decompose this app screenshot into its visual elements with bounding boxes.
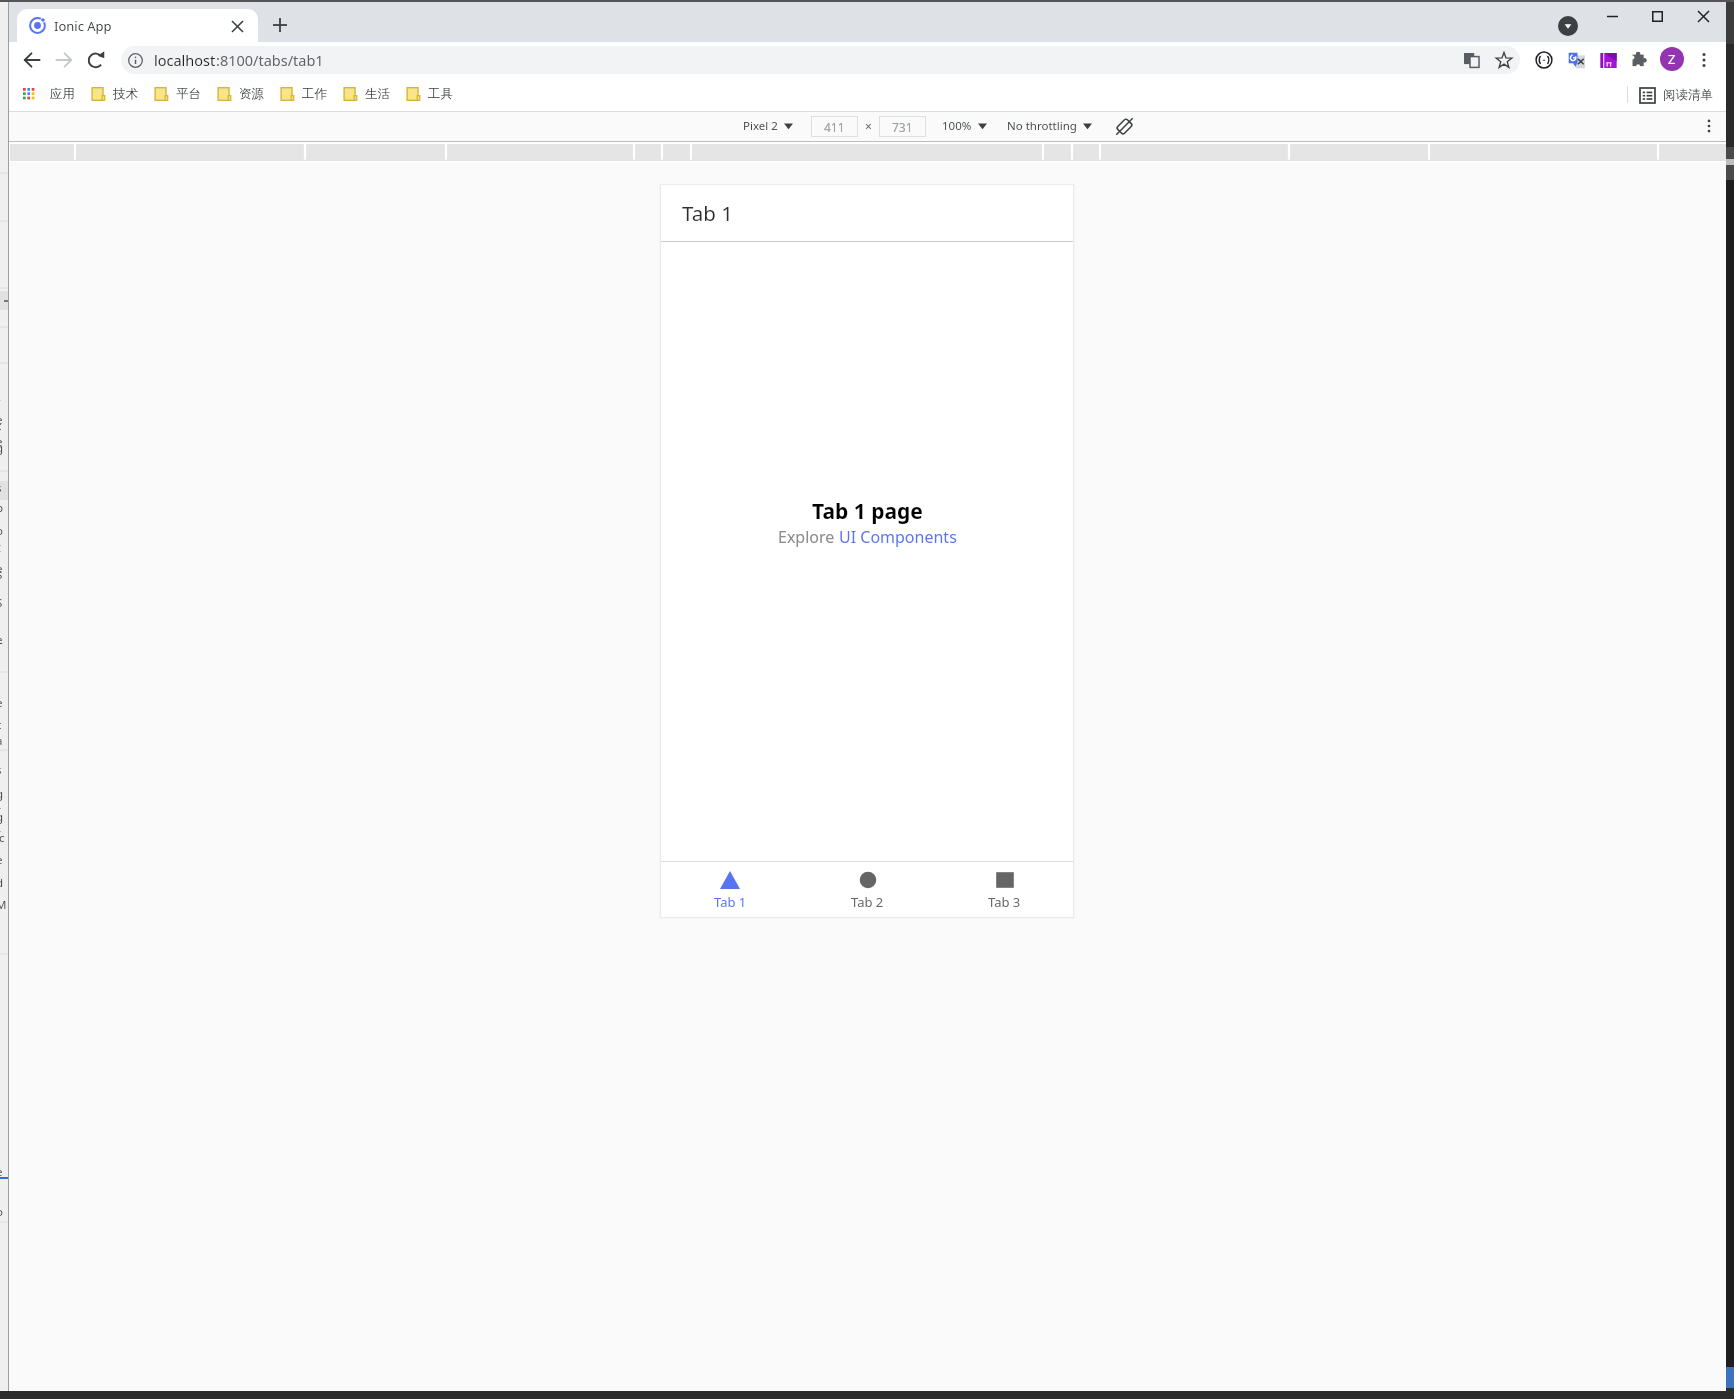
staticText: Explore [778,526,839,548]
button[interactable]: Extensions [1624,45,1654,75]
staticText: le [0,1148,5,1180]
staticText: 应用 [50,86,75,102]
button[interactable]: Downloads [1557,15,1578,36]
staticText: 100% [942,118,972,134]
staticText: Z [1668,50,1676,68]
staticText: di [0,875,5,907]
button[interactable]: Translate this page [1457,46,1485,74]
button[interactable]: 技术 [83,77,146,111]
staticText: 资源 [239,86,264,102]
button[interactable]: Close [1680,0,1726,32]
staticText: M [0,897,5,913]
staticText: ie [0,616,5,648]
staticText: e [0,852,3,868]
staticText: Tab 1 [714,893,747,911]
button[interactable]: More options [1689,45,1719,75]
button[interactable]: New tab [267,12,293,38]
button[interactable]: Pixel 2 [736,111,800,141]
button[interactable]: Back [17,45,47,75]
staticText: 生活 [365,86,390,102]
button[interactable]: Close tab [226,15,248,37]
staticText: ca [0,717,5,749]
button[interactable]: No throttling [1000,111,1099,141]
staticText: Ionic App [54,17,112,35]
staticText: s [0,480,2,496]
button[interactable]: Maximize [1634,0,1680,32]
staticText: re [0,545,5,577]
staticText: gr [0,786,5,818]
staticText: to [0,1188,5,1220]
button[interactable]: Minimize [1589,0,1635,32]
staticText: gr [0,809,5,841]
staticText: 技术 [113,86,138,102]
button[interactable]: Tab 2 [799,862,936,917]
staticText: s [0,762,2,778]
button[interactable]: Apps [16,81,42,107]
button[interactable]: Developer tools [1529,45,1559,75]
button[interactable]: DevTools menu [1698,115,1720,137]
staticText: e [0,695,3,711]
staticText: S [0,595,3,611]
staticText: ce [0,418,5,450]
button[interactable]: 生活 [335,77,398,111]
button[interactable]: 应用 [42,77,83,111]
button[interactable]: 资源 [209,77,272,111]
button[interactable]: 411 [811,116,858,137]
staticText: or [0,523,5,555]
button[interactable]: Google Translate extension [1566,50,1586,70]
button[interactable]: RP extension [1598,50,1618,70]
button[interactable]: Forward [49,45,79,75]
button[interactable]: 100% [935,111,994,141]
staticText: p [0,500,4,516]
button[interactable]: 731 [879,116,926,137]
button[interactable]: Reload [81,45,111,75]
staticText: Tab 3 [988,893,1021,911]
staticText: T [0,639,3,655]
staticText: × [865,118,872,134]
button[interactable]: Rotate [1112,114,1136,138]
staticText: localhost [154,50,216,70]
staticText: Tab 1 [682,199,733,227]
staticText: g [0,440,4,456]
staticText: ic [0,830,5,846]
button[interactable]: Account [1660,47,1684,71]
button[interactable]: localhost [121,46,1520,74]
staticText: 平台 [176,86,201,102]
staticText: 工具 [428,86,453,102]
button[interactable]: 平台 [146,77,209,111]
button[interactable]: Ionic App [17,9,258,42]
button[interactable]: Bookmark this tab [1490,46,1518,74]
staticText: Tab 1 page [812,497,923,526]
button[interactable]: Tab 1 [661,862,799,917]
button[interactable]: Tab 3 [936,862,1073,917]
button[interactable]: 工具 [398,77,461,111]
button[interactable]: Reading list [1640,87,1713,103]
staticText: Pixel 2 [743,118,778,134]
button[interactable]: 工作 [272,77,335,111]
staticText: fe [0,396,5,428]
staticText: 731 [892,119,913,135]
button[interactable]: UI Components [839,526,957,548]
staticText: :8100/tabs/tab1 [216,50,324,70]
staticText: 阅读清单 [1663,87,1713,103]
staticText: 411 [824,119,845,135]
staticText: S [0,567,3,583]
staticText: 工作 [302,86,327,102]
staticText: No throttling [1007,118,1077,134]
staticText: Tab 2 [851,893,884,911]
